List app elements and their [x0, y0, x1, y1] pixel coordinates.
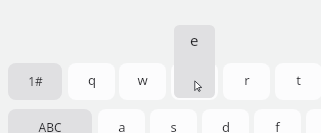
button[interactable]: f — [254, 109, 301, 133]
staticText: q — [88, 71, 96, 89]
staticText: f — [275, 118, 280, 133]
staticText: 1# — [28, 73, 43, 89]
staticText: e — [190, 30, 199, 50]
button[interactable]: r — [223, 63, 270, 100]
staticText: s — [170, 118, 177, 133]
button[interactable]: w — [119, 63, 166, 100]
button[interactable] — [171, 63, 218, 100]
button[interactable]: 1# — [8, 63, 62, 100]
button[interactable]: q — [68, 63, 115, 100]
staticText: r — [244, 71, 250, 89]
button[interactable]: t — [275, 63, 321, 100]
staticText: w — [137, 71, 148, 89]
staticText: ABC — [38, 119, 62, 133]
button[interactable]: ABC — [8, 109, 92, 133]
staticText: a — [118, 118, 126, 133]
other: Pointer — [194, 80, 208, 96]
button[interactable]: a — [98, 109, 145, 133]
button[interactable]: e — [174, 25, 215, 98]
staticText: t — [296, 71, 301, 89]
button[interactable]: s — [150, 109, 197, 133]
button[interactable]: d — [202, 109, 249, 133]
staticText: d — [222, 118, 230, 133]
